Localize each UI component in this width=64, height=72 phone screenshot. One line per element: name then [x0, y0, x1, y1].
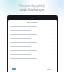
button[interactable]: Get started: [12, 68, 16, 70]
button[interactable]: [8, 56, 57, 60]
button[interactable]: [8, 24, 57, 28]
staticText: My Tasks: [27, 21, 38, 24]
staticText: simple lists that sync: [0, 8, 64, 11]
button[interactable]: [8, 44, 57, 48]
button[interactable]: Learn more: [47, 69, 51, 70]
staticText: Plan your day quickly: [0, 4, 64, 7]
button[interactable]: [8, 32, 57, 36]
button[interactable]: [8, 28, 57, 32]
button[interactable]: [8, 40, 57, 44]
button[interactable]: [8, 36, 57, 40]
button[interactable]: [8, 48, 57, 52]
button[interactable]: My Tasks: [8, 21, 57, 24]
button[interactable]: [8, 52, 57, 56]
